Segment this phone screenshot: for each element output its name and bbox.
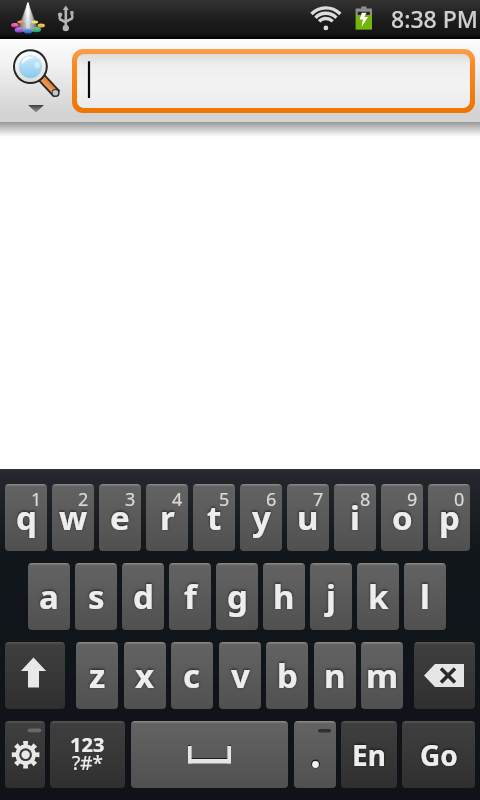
button[interactable]: l xyxy=(404,563,446,630)
button[interactable]: n xyxy=(314,642,356,709)
button[interactable]: Shift xyxy=(5,642,65,709)
button[interactable]: z xyxy=(76,642,118,709)
staticText: 5 xyxy=(219,487,230,512)
staticText: 7 xyxy=(313,487,324,512)
button[interactable]: c xyxy=(171,642,213,709)
button[interactable]: e xyxy=(99,484,141,551)
button[interactable]: u xyxy=(287,484,329,551)
staticText: x xyxy=(135,653,155,698)
button[interactable]: Symbols xyxy=(50,721,125,788)
button[interactable]: x xyxy=(124,642,166,709)
button[interactable]: Keyboard settings xyxy=(5,721,45,788)
button[interactable]: i xyxy=(334,484,376,551)
button[interactable]: En xyxy=(341,721,397,788)
staticText: k xyxy=(368,574,389,619)
staticText: 3 xyxy=(125,487,136,512)
button[interactable]: k xyxy=(357,563,399,630)
staticText: 9 xyxy=(407,487,418,512)
staticText: j xyxy=(326,574,336,619)
button[interactable]: Backspace xyxy=(414,642,475,709)
staticText: 8:38 PM xyxy=(391,3,478,34)
button[interactable]: y xyxy=(240,484,282,551)
button[interactable]: Search provider xyxy=(0,39,66,122)
button[interactable]: t xyxy=(193,484,235,551)
staticText: u xyxy=(297,495,319,540)
staticText: w xyxy=(59,495,88,540)
button[interactable]: w xyxy=(52,484,94,551)
staticText: En xyxy=(352,736,386,774)
button[interactable]: q xyxy=(5,484,47,551)
button[interactable]: f xyxy=(169,563,211,630)
staticText: e xyxy=(110,495,130,540)
staticText: t xyxy=(207,495,222,540)
staticText: n xyxy=(324,653,346,698)
staticText: v xyxy=(231,653,250,698)
staticText: p xyxy=(439,495,460,540)
staticText: o xyxy=(392,495,413,540)
button[interactable]: g xyxy=(216,563,258,630)
staticText: z xyxy=(89,653,106,698)
staticText: r xyxy=(160,495,175,540)
button[interactable]: m xyxy=(361,642,403,709)
staticText: 0 xyxy=(454,487,465,512)
button[interactable]: Space xyxy=(131,721,288,788)
button[interactable]: Go xyxy=(402,721,475,788)
staticText: m xyxy=(366,653,399,698)
staticText: i xyxy=(350,495,360,540)
staticText: b xyxy=(277,653,298,698)
staticText: 4 xyxy=(172,487,183,512)
button[interactable]: p xyxy=(428,484,470,551)
staticText: d xyxy=(133,574,154,619)
staticText: y xyxy=(252,495,271,540)
staticText: f xyxy=(184,574,197,619)
staticText: Go xyxy=(420,736,458,774)
staticText: 2 xyxy=(78,487,89,512)
staticText: a xyxy=(39,574,59,619)
button[interactable]: v xyxy=(219,642,261,709)
staticText: c xyxy=(183,653,201,698)
staticText: s xyxy=(88,574,105,619)
staticText: g xyxy=(227,574,248,619)
button[interactable]: r xyxy=(146,484,188,551)
button[interactable]: Period xyxy=(294,721,336,788)
button[interactable]: s xyxy=(75,563,117,630)
button[interactable]: o xyxy=(381,484,423,551)
staticText: l xyxy=(420,574,430,619)
staticText: 6 xyxy=(266,487,277,512)
button[interactable] xyxy=(77,54,470,108)
staticText: 1 xyxy=(31,487,42,512)
button[interactable]: j xyxy=(310,563,352,630)
staticText: ?#* xyxy=(72,750,103,776)
button[interactable]: a xyxy=(28,563,70,630)
button[interactable]: h xyxy=(263,563,305,630)
staticText: 8 xyxy=(360,487,371,512)
staticText: 123 xyxy=(70,731,105,758)
button[interactable]: d xyxy=(122,563,164,630)
staticText: h xyxy=(273,574,295,619)
button[interactable]: b xyxy=(266,642,308,709)
staticText: q xyxy=(16,495,37,540)
